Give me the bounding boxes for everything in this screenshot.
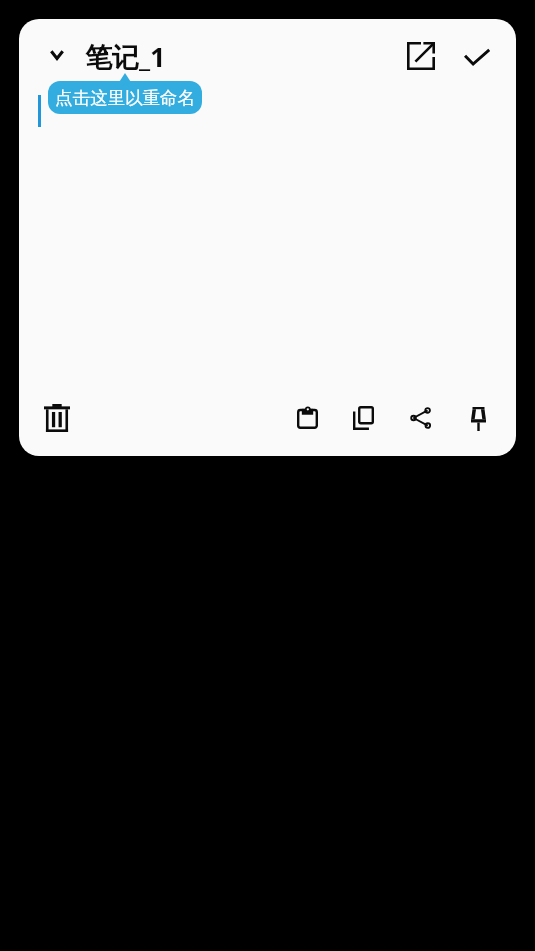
button[interactable]: Collapse note: [37, 35, 77, 75]
button[interactable]: 点击这里以重命名: [48, 81, 202, 114]
button[interactable]: Pin: [458, 399, 498, 439]
button[interactable]: Paste: [287, 396, 327, 436]
button[interactable]: Done: [455, 35, 499, 79]
staticText: 点击这里以重命名: [55, 87, 195, 109]
button[interactable]: Open in new window: [399, 34, 443, 78]
button[interactable]: Delete: [37, 398, 77, 438]
button[interactable]: Copy: [343, 398, 383, 438]
staticText: 笔记_1: [85, 38, 166, 75]
button[interactable]: 笔记_1: [85, 33, 166, 79]
button[interactable]: Share: [401, 398, 441, 438]
